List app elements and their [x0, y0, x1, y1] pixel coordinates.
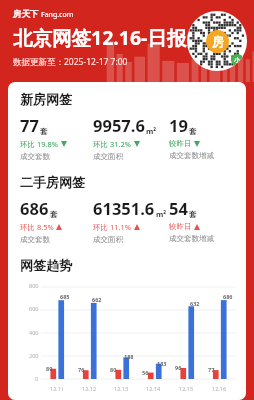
- staticText: 54: [169, 197, 188, 219]
- staticText: 北京网签12.16-日报: [13, 24, 187, 51]
- staticText: 房天下: [13, 9, 39, 20]
- staticText: 0: [35, 375, 39, 382]
- staticText: Fang.com: [41, 10, 74, 20]
- staticText: 80: [110, 366, 117, 373]
- staticText: 二手房网签: [20, 174, 85, 190]
- staticText: 成交面积: [93, 235, 123, 244]
- staticText: 较昨日: [169, 139, 192, 148]
- staticText: 成交套数增减: [169, 234, 214, 243]
- staticText: 成交套数: [20, 152, 50, 161]
- staticText: 133: [157, 360, 167, 367]
- staticText: 77: [20, 114, 39, 136]
- staticText: 77: [208, 366, 215, 373]
- staticText: 200: [29, 352, 39, 359]
- staticText: 686: [20, 197, 49, 219]
- staticText: 12.11: [50, 385, 65, 392]
- staticText: 房: [212, 34, 224, 49]
- staticText: 小: [234, 56, 240, 64]
- staticText: 632: [190, 300, 200, 307]
- staticText: m²: [156, 209, 167, 219]
- staticText: 12.15: [179, 385, 194, 392]
- staticText: 新房网签: [20, 91, 72, 107]
- staticText: 套: [189, 210, 197, 219]
- button[interactable]: 扫描二维码关注: [187, 11, 247, 71]
- staticText: 较昨日: [169, 222, 192, 231]
- staticText: 数据更新至：2025-12-17 7:00: [13, 56, 128, 68]
- staticText: 188: [124, 353, 134, 360]
- staticText: 12.14: [146, 385, 161, 392]
- button[interactable]: 686: [20, 197, 93, 244]
- staticText: 685: [60, 293, 70, 300]
- staticText: 662: [92, 296, 102, 303]
- staticText: 686: [223, 293, 233, 300]
- staticText: 56: [142, 369, 149, 376]
- staticText: 成交套数: [20, 235, 50, 244]
- staticText: 成交套数增减: [169, 151, 214, 160]
- button[interactable]: 19: [169, 114, 238, 160]
- staticText: 9957.6: [93, 114, 145, 136]
- staticText: 89: [46, 365, 53, 372]
- staticText: m²: [146, 126, 157, 136]
- button[interactable]: 54: [169, 197, 238, 243]
- staticText: 网签趋势: [20, 257, 72, 273]
- staticText: 12.13: [114, 385, 129, 392]
- button[interactable]: 9957.6: [93, 114, 169, 161]
- staticText: 环比 19.8%: [20, 139, 59, 149]
- staticText: 套: [40, 127, 48, 136]
- staticText: 19: [169, 114, 188, 136]
- staticText: 12.12: [82, 385, 97, 392]
- staticText: 成交面积: [93, 152, 123, 161]
- staticText: 800: [29, 282, 39, 289]
- button[interactable]: 77: [20, 114, 93, 161]
- staticText: 套: [50, 210, 58, 219]
- staticText: 环比 11.1%: [93, 222, 132, 232]
- staticText: 61351.6: [93, 197, 155, 219]
- staticText: 环比 8.5%: [20, 222, 54, 232]
- staticText: 环比 31.2%: [93, 139, 132, 149]
- staticText: 12.16: [212, 385, 227, 392]
- staticText: 76: [78, 366, 85, 373]
- staticText: 96: [175, 364, 182, 371]
- staticText: 400: [29, 329, 39, 336]
- button[interactable]: 61351.6: [93, 197, 169, 244]
- staticText: 600: [29, 305, 39, 312]
- staticText: 套: [189, 127, 197, 136]
